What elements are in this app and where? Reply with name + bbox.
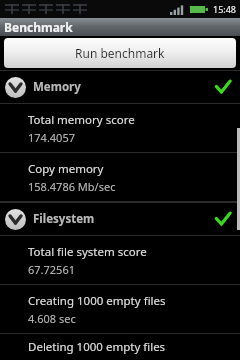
staticText: Run benchmark <box>75 45 165 61</box>
staticText: Total file system score <box>28 244 147 260</box>
staticText: Memory <box>33 79 215 95</box>
staticText: Benchmark <box>4 19 73 35</box>
button[interactable]: Collapse Memory <box>0 71 240 103</box>
staticText: Copy memory <box>28 161 104 177</box>
button[interactable]: Collapse Filesystem <box>0 203 240 235</box>
button[interactable]: Total memory score <box>0 104 240 152</box>
staticText: Filesystem <box>33 211 215 227</box>
staticText: Deleting 1000 empty files <box>28 339 166 355</box>
button[interactable]: Run benchmark <box>4 38 236 68</box>
staticText: Total memory score <box>28 112 135 128</box>
staticText: Creating 1000 empty files <box>28 293 166 309</box>
button[interactable]: Copy memory <box>0 153 240 201</box>
staticText: 67.72561 <box>28 262 75 277</box>
staticText: 158.4786 Mb/sec <box>28 179 116 194</box>
button[interactable]: Creating 1000 empty files <box>0 285 240 333</box>
other: Collapse Filesystem <box>5 209 26 230</box>
staticText: 4.608 sec <box>28 311 76 326</box>
button[interactable]: Deleting 1000 empty files <box>0 334 240 360</box>
other: Collapse Memory <box>5 77 26 98</box>
button[interactable]: Total file system score <box>0 236 240 284</box>
staticText: 174.4057 <box>28 130 75 145</box>
staticText: 15:48 <box>213 3 237 15</box>
